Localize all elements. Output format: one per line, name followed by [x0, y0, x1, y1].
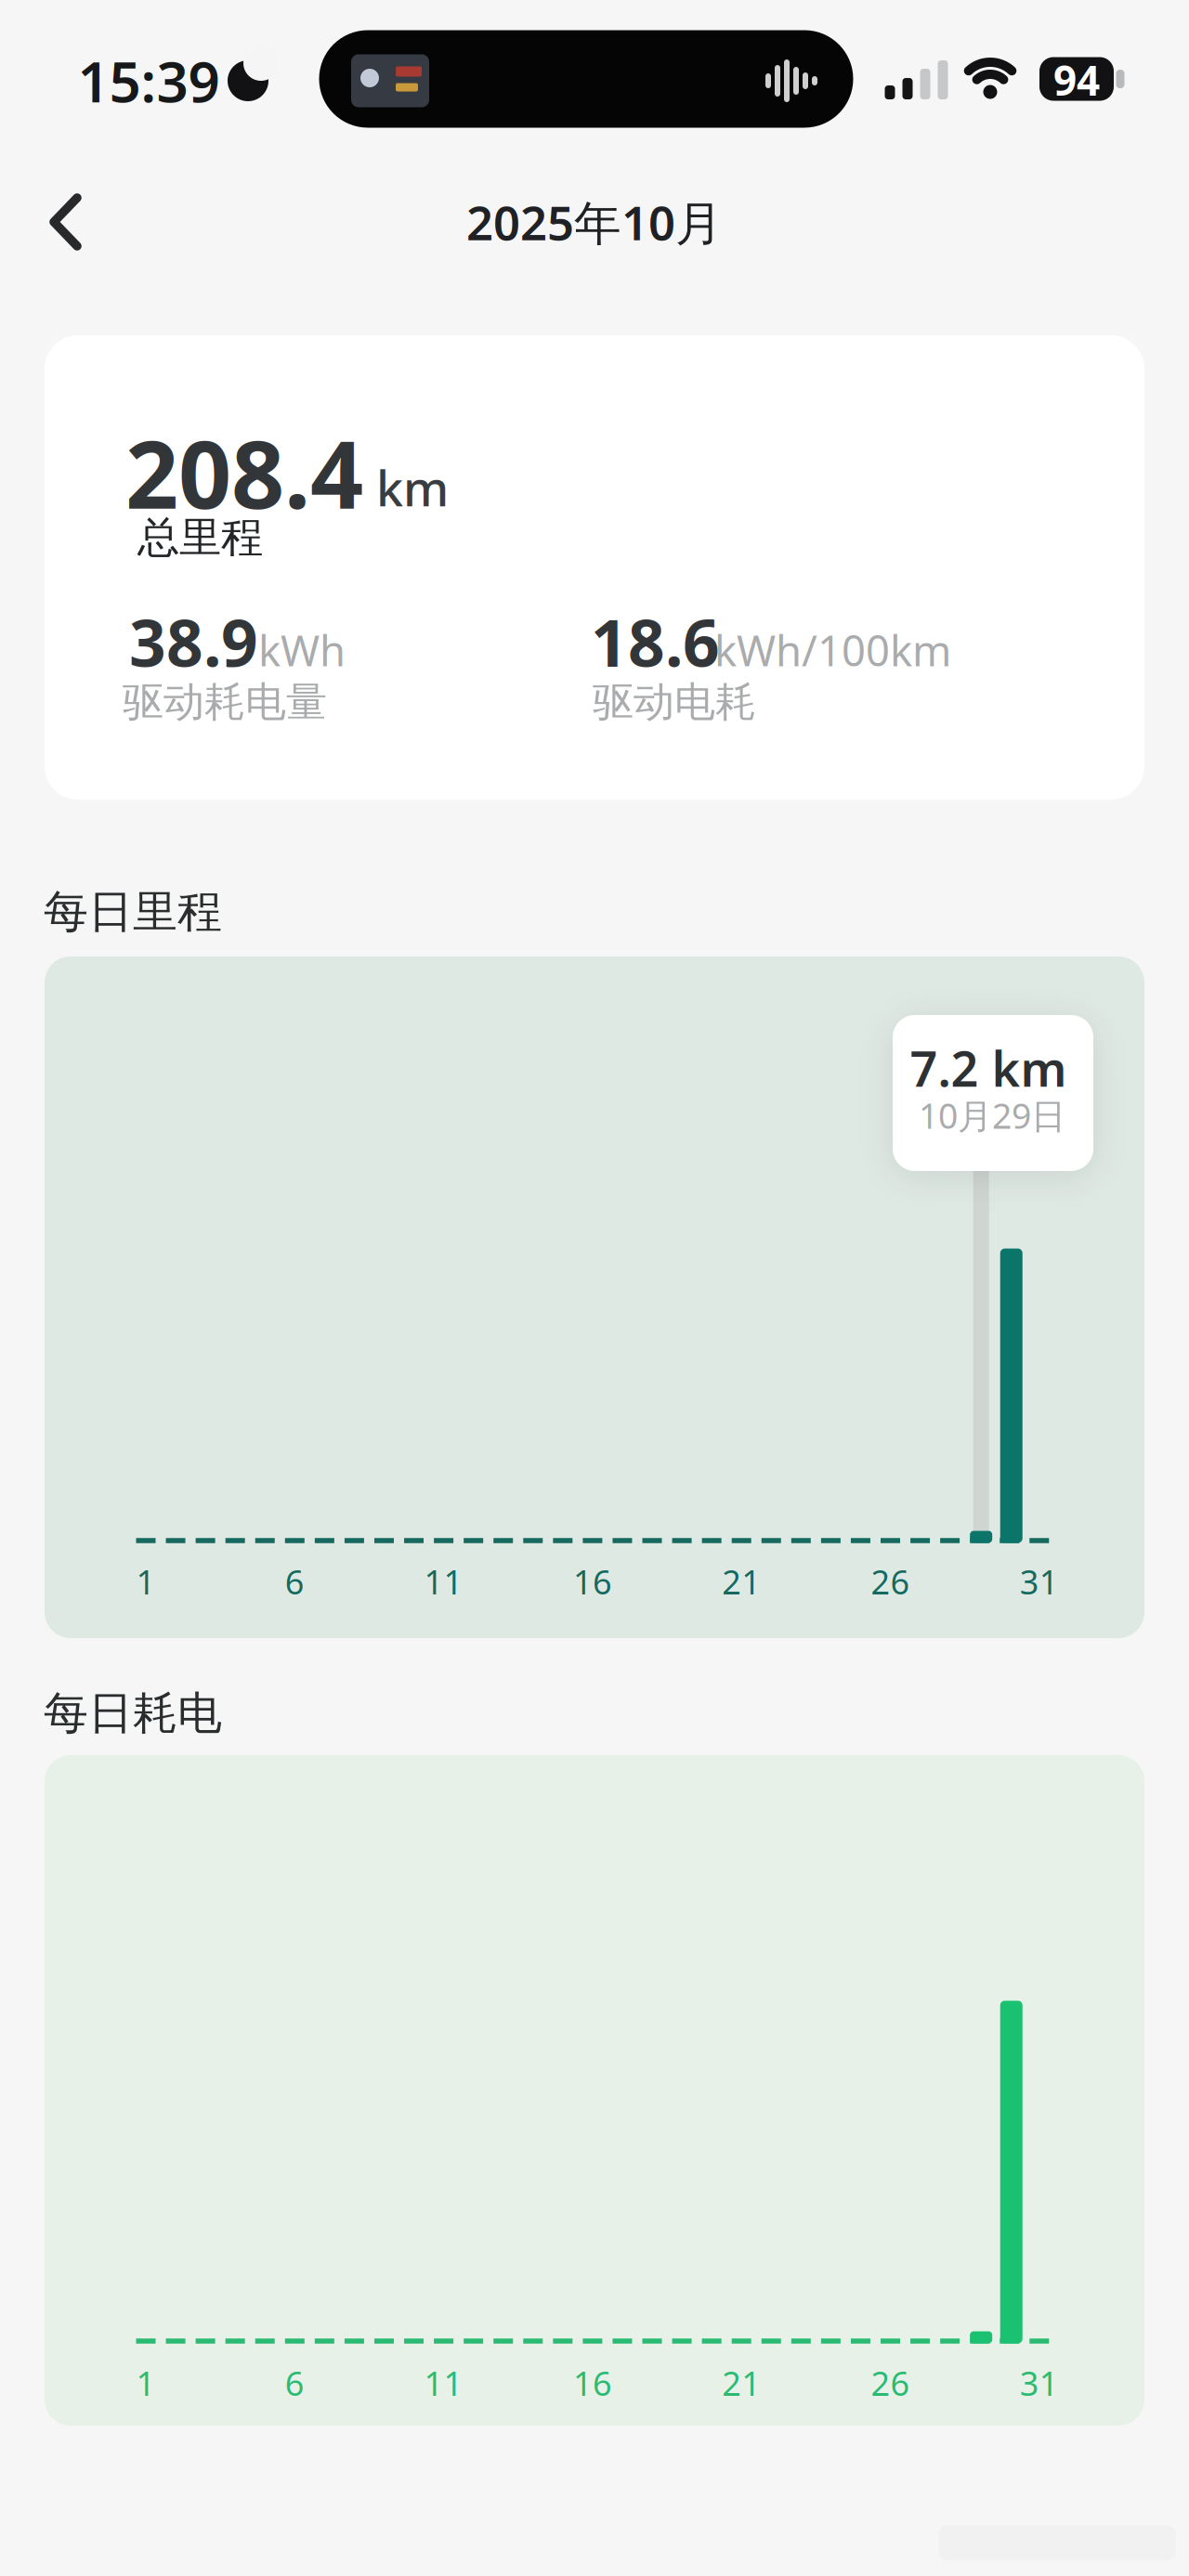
staticText: 驱动电耗 — [593, 677, 756, 727]
staticText: 18.6 — [591, 599, 720, 684]
staticText: 94 — [1053, 53, 1100, 107]
staticText: 6 — [285, 2361, 304, 2405]
staticText: 15:39 — [78, 44, 220, 118]
staticText: 26 — [871, 2361, 910, 2405]
staticText: 11 — [424, 2361, 463, 2405]
staticText: kWh/100km — [714, 622, 951, 678]
staticText: 6 — [285, 1559, 304, 1604]
staticText: 1 — [136, 1559, 156, 1604]
staticText: 驱动耗电量 — [123, 677, 327, 727]
button[interactable] — [893, 1015, 1093, 1171]
staticText: 21 — [722, 2361, 761, 2405]
button[interactable] — [0, 0, 1189, 2576]
staticText: 31 — [1020, 1559, 1059, 1604]
staticText: 16 — [573, 2361, 612, 2405]
staticText: 11 — [424, 1559, 463, 1604]
staticText: 208.4 — [125, 411, 363, 534]
staticText: 1 — [136, 2361, 156, 2405]
staticText: 2025年10月 — [466, 191, 723, 253]
staticText: km — [376, 455, 449, 520]
staticText: 21 — [722, 1559, 761, 1604]
staticText: 10月29日 — [919, 1092, 1065, 1138]
staticText: 总里程 — [137, 512, 263, 564]
staticText: 每日耗电 — [44, 1686, 222, 1741]
button[interactable] — [45, 335, 1144, 800]
staticText: 7.2 km — [910, 1036, 1067, 1100]
staticText: 16 — [573, 1559, 612, 1604]
staticText: 26 — [871, 1559, 910, 1604]
staticText: 每日里程 — [44, 885, 222, 939]
staticText: kWh — [258, 622, 346, 678]
staticText: 31 — [1020, 2361, 1059, 2405]
staticText: 38.9 — [129, 599, 258, 684]
